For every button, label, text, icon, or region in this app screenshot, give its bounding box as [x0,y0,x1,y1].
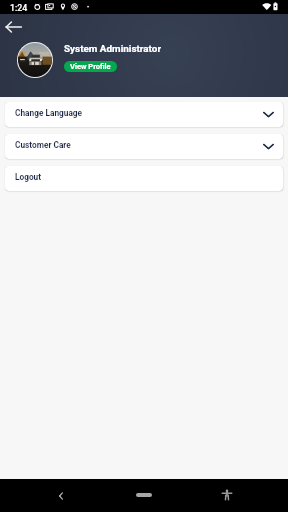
button[interactable]: Back [2,14,26,40]
button[interactable]: Home [124,482,164,507]
button[interactable]: Change Language [5,102,283,127]
staticText: 1:24 [10,3,28,13]
staticText: System Administrator [64,43,162,55]
button[interactable]: View Profile [64,61,117,72]
staticText: Change Language [15,108,83,118]
staticText: Customer Care [15,140,71,150]
button[interactable]: Back [46,483,76,508]
staticText: View Profile [70,62,111,71]
button[interactable]: Accessibility [212,482,242,507]
button[interactable]: Logout [5,166,283,191]
staticText: Logout [15,172,42,182]
button[interactable]: Customer Care [5,134,283,159]
